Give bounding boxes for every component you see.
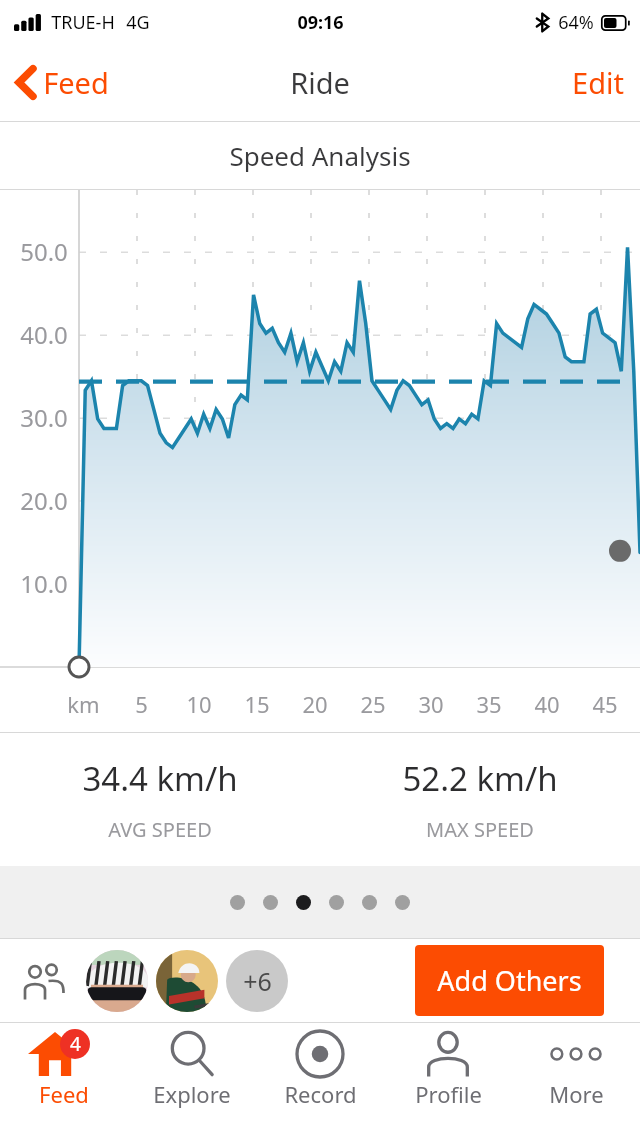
staticText: 52.2 km/h bbox=[402, 756, 558, 801]
staticText: 40 bbox=[534, 689, 560, 719]
button[interactable]: Feed bbox=[0, 53, 123, 112]
staticText: AVG SPEED bbox=[108, 816, 212, 843]
button[interactable] bbox=[86, 950, 148, 1012]
staticText: MAX SPEED bbox=[426, 816, 534, 843]
button[interactable]: Athletes bbox=[20, 961, 70, 1001]
staticText: 10 bbox=[186, 689, 212, 719]
staticText: 09:16 bbox=[297, 10, 344, 35]
button[interactable] bbox=[156, 950, 218, 1012]
staticText: 4 bbox=[70, 1031, 81, 1057]
button[interactable]: 34.4 km/h bbox=[0, 733, 320, 866]
button[interactable]: Profile bbox=[384, 1023, 512, 1114]
staticText: 30 bbox=[418, 689, 444, 719]
staticText: 4G bbox=[126, 10, 150, 35]
button[interactable]: More bbox=[512, 1023, 640, 1114]
button[interactable]: Record bbox=[256, 1023, 384, 1114]
staticText: 5 bbox=[135, 689, 148, 719]
staticText: 30.0 bbox=[20, 401, 68, 434]
staticText: Explore bbox=[153, 1079, 231, 1109]
staticText: 64% bbox=[558, 10, 594, 35]
staticText: 25 bbox=[360, 689, 386, 719]
staticText: Record bbox=[284, 1079, 357, 1109]
staticText: 20 bbox=[302, 689, 328, 719]
button[interactable]: Add Others bbox=[415, 945, 604, 1016]
staticText: Feed bbox=[39, 1079, 89, 1109]
staticText: +6 bbox=[243, 964, 272, 998]
staticText: 20.0 bbox=[20, 484, 68, 517]
staticText: 15 bbox=[244, 689, 270, 719]
staticText: Add Others bbox=[437, 962, 582, 999]
staticText: 35 bbox=[476, 689, 502, 719]
button[interactable]: 52.2 km/h bbox=[320, 733, 640, 866]
staticText: 10.0 bbox=[20, 567, 68, 600]
staticText: 45 bbox=[592, 689, 618, 719]
staticText: Ride bbox=[290, 63, 350, 102]
button[interactable]: 4 bbox=[0, 1023, 128, 1114]
staticText: More bbox=[549, 1079, 604, 1109]
staticText: Feed bbox=[43, 63, 109, 102]
staticText: 34.4 km/h bbox=[82, 756, 238, 801]
staticText: Speed Analysis bbox=[229, 138, 411, 173]
staticText: 50.0 bbox=[20, 235, 68, 268]
button[interactable]: Edit bbox=[556, 51, 640, 114]
button[interactable]: Explore bbox=[128, 1023, 256, 1114]
staticText: Profile bbox=[415, 1079, 482, 1109]
staticText: km bbox=[67, 689, 100, 719]
staticText: Edit bbox=[572, 63, 624, 102]
staticText: 40.0 bbox=[20, 318, 68, 351]
button[interactable]: +6 bbox=[226, 950, 288, 1012]
staticText: TRUE-H bbox=[51, 10, 115, 35]
